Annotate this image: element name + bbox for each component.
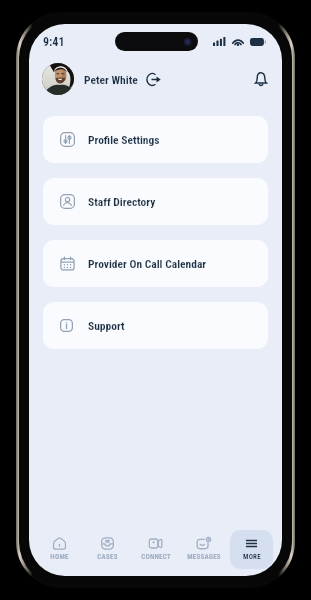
- button[interactable]: Log out: [146, 72, 161, 87]
- staticText: MESSAGES: [187, 553, 221, 561]
- staticText: CONNECT: [141, 553, 171, 561]
- button[interactable]: Profile Settings: [43, 116, 268, 163]
- button[interactable]: HOME: [38, 530, 81, 569]
- button[interactable]: MESSAGES: [182, 530, 225, 569]
- staticText: Provider On Call Calendar: [88, 257, 207, 270]
- staticText: 9:41: [43, 35, 65, 49]
- button[interactable]: MORE: [230, 530, 273, 569]
- staticText: HOME: [50, 553, 69, 561]
- button[interactable]: Staff Directory: [43, 178, 268, 225]
- staticText: Peter White: [84, 73, 138, 86]
- button[interactable]: Support: [43, 302, 268, 349]
- staticText: MORE: [243, 553, 261, 561]
- button[interactable]: CASES: [86, 530, 129, 569]
- staticText: Support: [88, 319, 125, 332]
- button[interactable]: Notifications: [252, 70, 270, 88]
- button[interactable]: Provider On Call Calendar: [43, 240, 268, 287]
- staticText: Staff Directory: [88, 195, 156, 208]
- button[interactable]: CONNECT: [134, 530, 177, 569]
- staticText: Profile Settings: [88, 133, 160, 146]
- staticText: CASES: [97, 553, 118, 561]
